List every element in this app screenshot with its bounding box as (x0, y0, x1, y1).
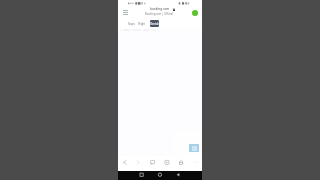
button[interactable]: Back (118, 156, 132, 171)
button[interactable]: Home (174, 156, 188, 171)
staticText: Rentals (150, 22, 159, 26)
staticText: Stays (128, 22, 135, 26)
button[interactable]: Tabs (160, 156, 174, 171)
button[interactable]: Home (146, 171, 174, 180)
button[interactable]: Flights (138, 20, 145, 27)
button[interactable]: Menu (118, 8, 132, 17)
staticText: Booking.com | Official (145, 12, 173, 16)
button[interactable]: Stays (128, 20, 135, 27)
staticText: booking.com (150, 7, 170, 11)
button[interactable]: Video player (189, 144, 199, 152)
button[interactable]: Recent apps (118, 171, 146, 180)
button[interactable]: Back (174, 171, 202, 180)
button[interactable]: Account (189, 7, 200, 18)
button[interactable]: Share (146, 156, 160, 171)
button[interactable]: Rentals (150, 20, 159, 27)
staticText: Flights (138, 22, 145, 26)
